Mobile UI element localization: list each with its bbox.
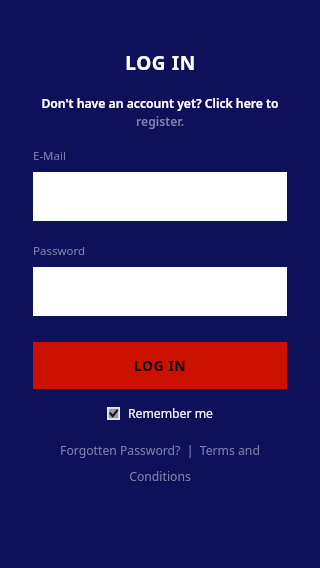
staticText: LOG IN: [134, 356, 187, 375]
button[interactable]: Forgotten Password? | Terms and Conditio…: [33, 442, 287, 485]
staticText: Don't have an account yet? Click here to…: [33, 95, 287, 130]
button[interactable]: LOG IN: [33, 342, 287, 389]
button[interactable]: Don't have an account yet? Click here to…: [33, 95, 287, 130]
other: Remember me checkbox: [107, 407, 120, 420]
button[interactable]: Remember me checkbox: [107, 405, 213, 422]
staticText: Remember me: [128, 405, 213, 422]
staticText: Forgotten Password? | Terms and Conditio…: [33, 442, 287, 485]
staticText: E-Mail: [33, 148, 66, 164]
staticText: LOG IN: [125, 50, 196, 76]
staticText: Password: [33, 243, 86, 259]
